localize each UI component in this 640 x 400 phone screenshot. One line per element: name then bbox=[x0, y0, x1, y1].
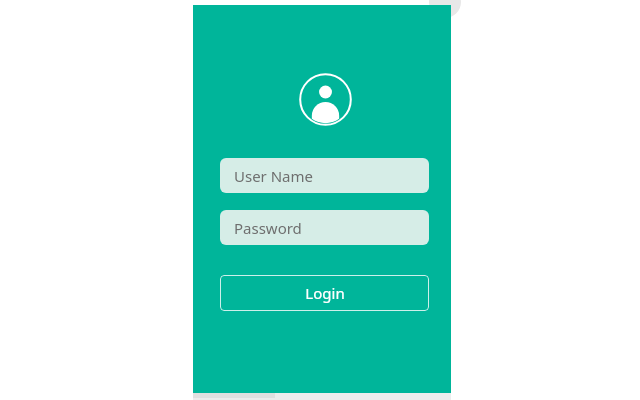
button[interactable]: User Name bbox=[220, 158, 429, 193]
staticText: User Name bbox=[234, 166, 314, 186]
staticText: Password bbox=[234, 218, 302, 238]
other: Profile avatar bbox=[299, 73, 352, 126]
staticText: Login bbox=[305, 283, 345, 303]
button[interactable]: Login bbox=[220, 275, 429, 311]
button[interactable]: Password bbox=[220, 210, 429, 245]
